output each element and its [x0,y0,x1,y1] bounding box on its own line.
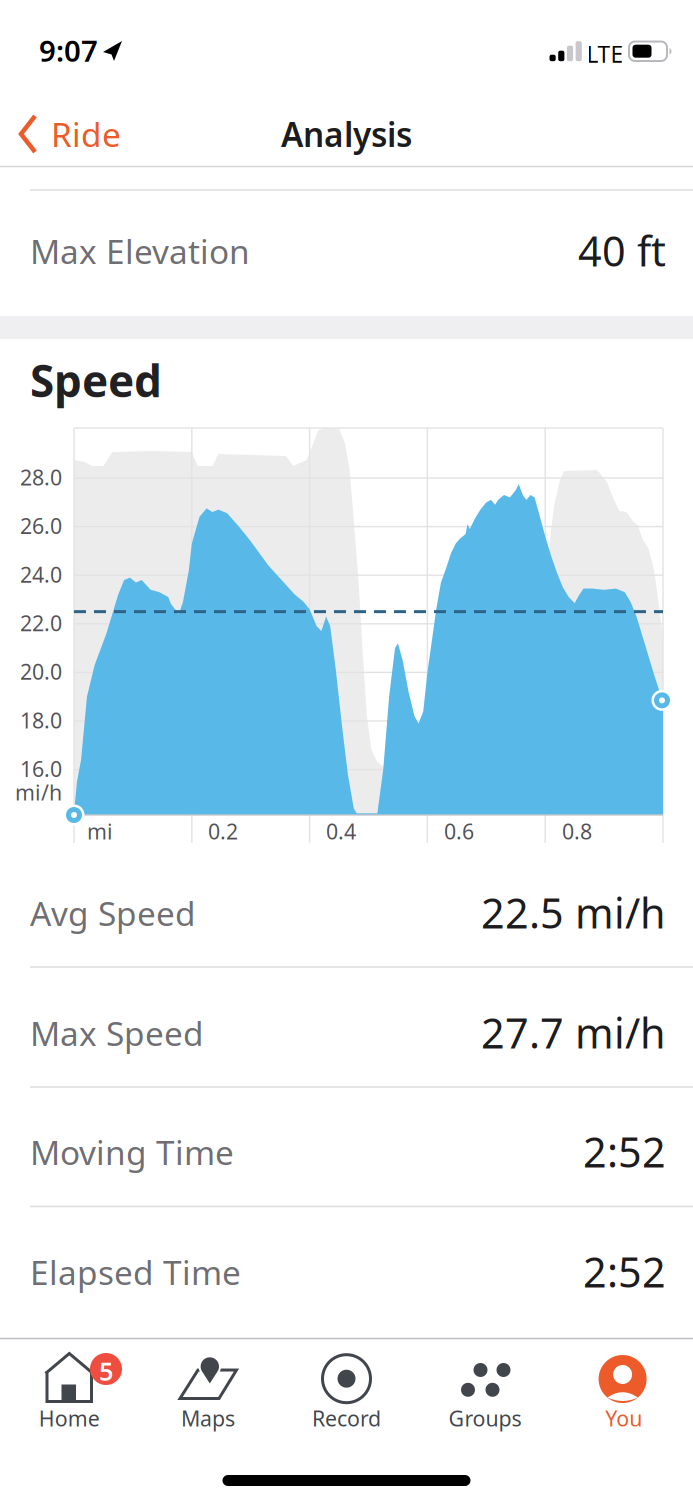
button[interactable]: Record [277,1340,416,1462]
staticText: 40 ft [578,223,666,278]
button[interactable]: Ride [18,108,168,160]
staticText: Groups [449,1404,522,1432]
staticText: 0.6 [444,817,474,845]
staticText: 2:52 [583,1244,666,1299]
staticText: 22.0 [20,609,62,637]
staticText: Ride [51,112,121,156]
staticText: 28.0 [20,463,62,491]
button[interactable]: You [554,1340,693,1462]
staticText: Elapsed Time [30,1250,241,1294]
staticText: Max Speed [30,1011,204,1055]
staticText: 9:07 [39,31,98,70]
staticText: 2:52 [583,1124,666,1179]
staticText: 0.2 [208,817,238,845]
staticText: 5 [99,1354,113,1388]
staticText: Speed [30,351,162,409]
staticText: Max Elevation [30,229,250,273]
staticText: Maps [181,1404,235,1432]
staticText: Moving Time [30,1130,234,1174]
staticText: LTE [586,39,623,69]
staticText: You [605,1404,642,1432]
staticText: 22.5 mi/h [481,885,666,940]
staticText: mi [87,817,113,845]
button[interactable]: Maps [139,1340,277,1462]
staticText: 20.0 [20,657,62,686]
staticText: 24.0 [20,560,62,588]
staticText: 16.0 [20,755,62,783]
staticText: mi/h [15,778,62,806]
staticText: Home [39,1404,100,1432]
staticText: Avg Speed [30,891,196,935]
button[interactable]: Groups [416,1340,554,1462]
staticText: Record [312,1404,381,1432]
staticText: 18.0 [20,706,62,734]
staticText: 0.8 [562,817,592,845]
staticText: 26.0 [20,512,62,540]
button[interactable]: 5 [0,1340,139,1462]
staticText: 0.4 [326,817,356,845]
staticText: Analysis [281,112,412,156]
staticText: 27.7 mi/h [481,1005,666,1060]
